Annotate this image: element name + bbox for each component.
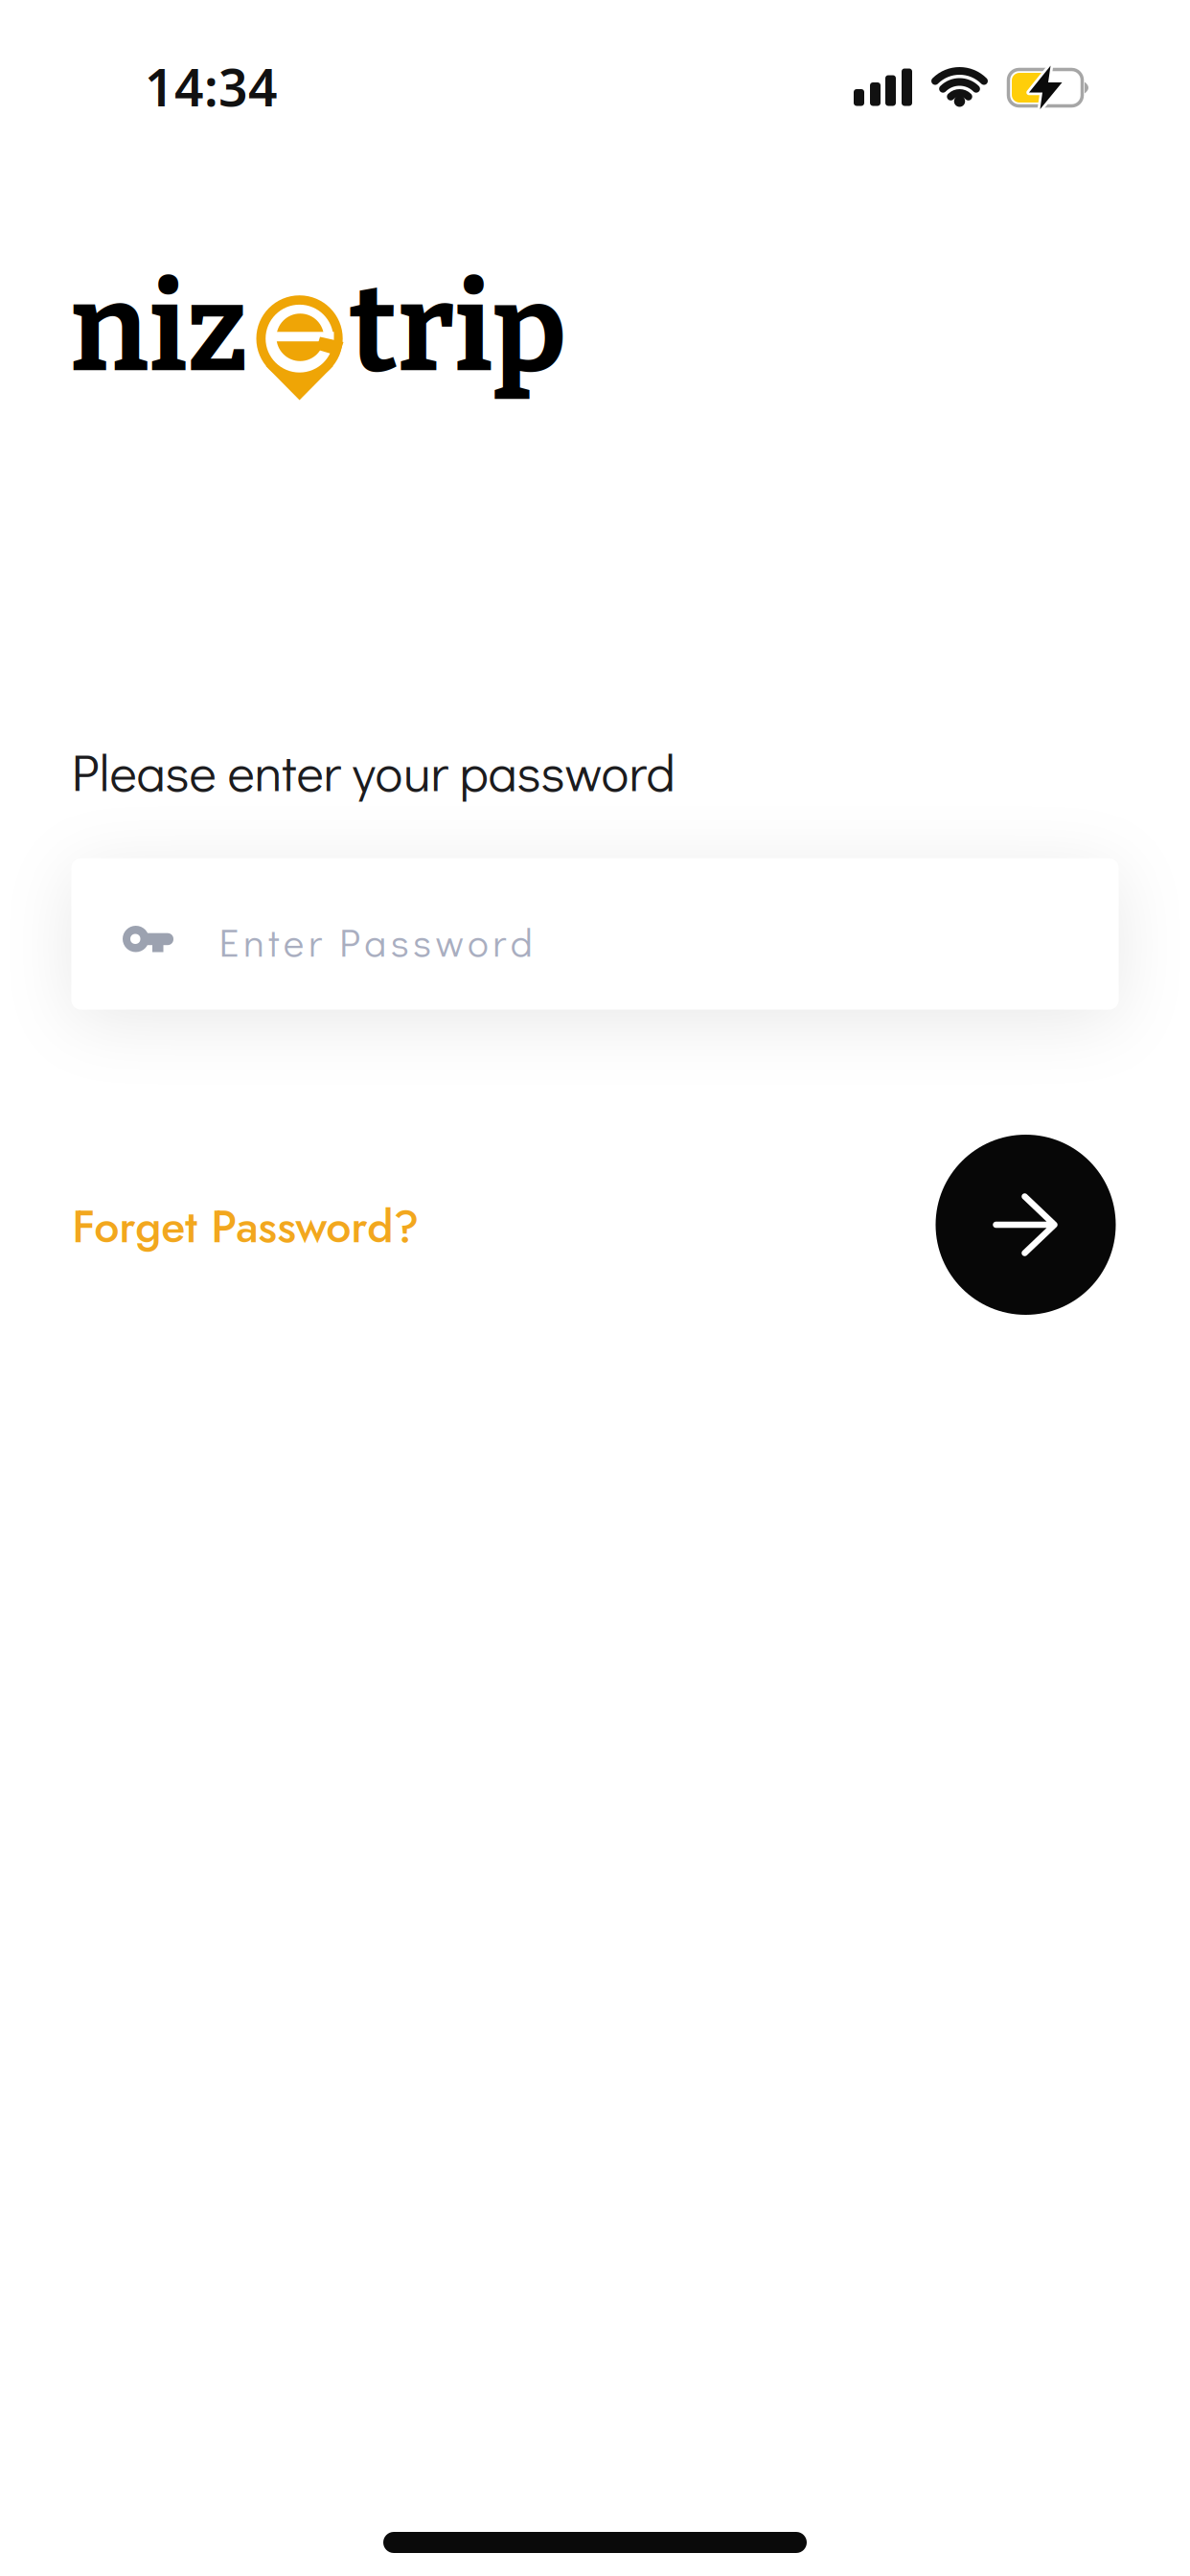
button[interactable]: Enter Password [71, 858, 1119, 1010]
staticText: t [269, 915, 279, 967]
staticText: P [339, 915, 360, 967]
staticText: s [391, 915, 409, 967]
staticText: trip [349, 256, 566, 403]
staticText: r [309, 915, 322, 967]
staticText: a [364, 915, 386, 967]
staticText: n [243, 915, 264, 967]
staticText: r [493, 915, 506, 967]
staticText: e [283, 915, 304, 967]
staticText: 14:34 [145, 53, 278, 121]
staticText: o [467, 915, 489, 967]
staticText: s [413, 915, 431, 967]
staticText: Please enter your password [71, 737, 675, 805]
staticText: E [219, 915, 239, 967]
staticText: Forget Password? [72, 1195, 419, 1259]
button[interactable]: Forget Password? [72, 1195, 419, 1259]
button[interactable]: Continue [936, 1135, 1116, 1315]
staticText: niz [70, 256, 248, 403]
staticText: w [435, 915, 463, 967]
staticText: d [510, 915, 532, 967]
